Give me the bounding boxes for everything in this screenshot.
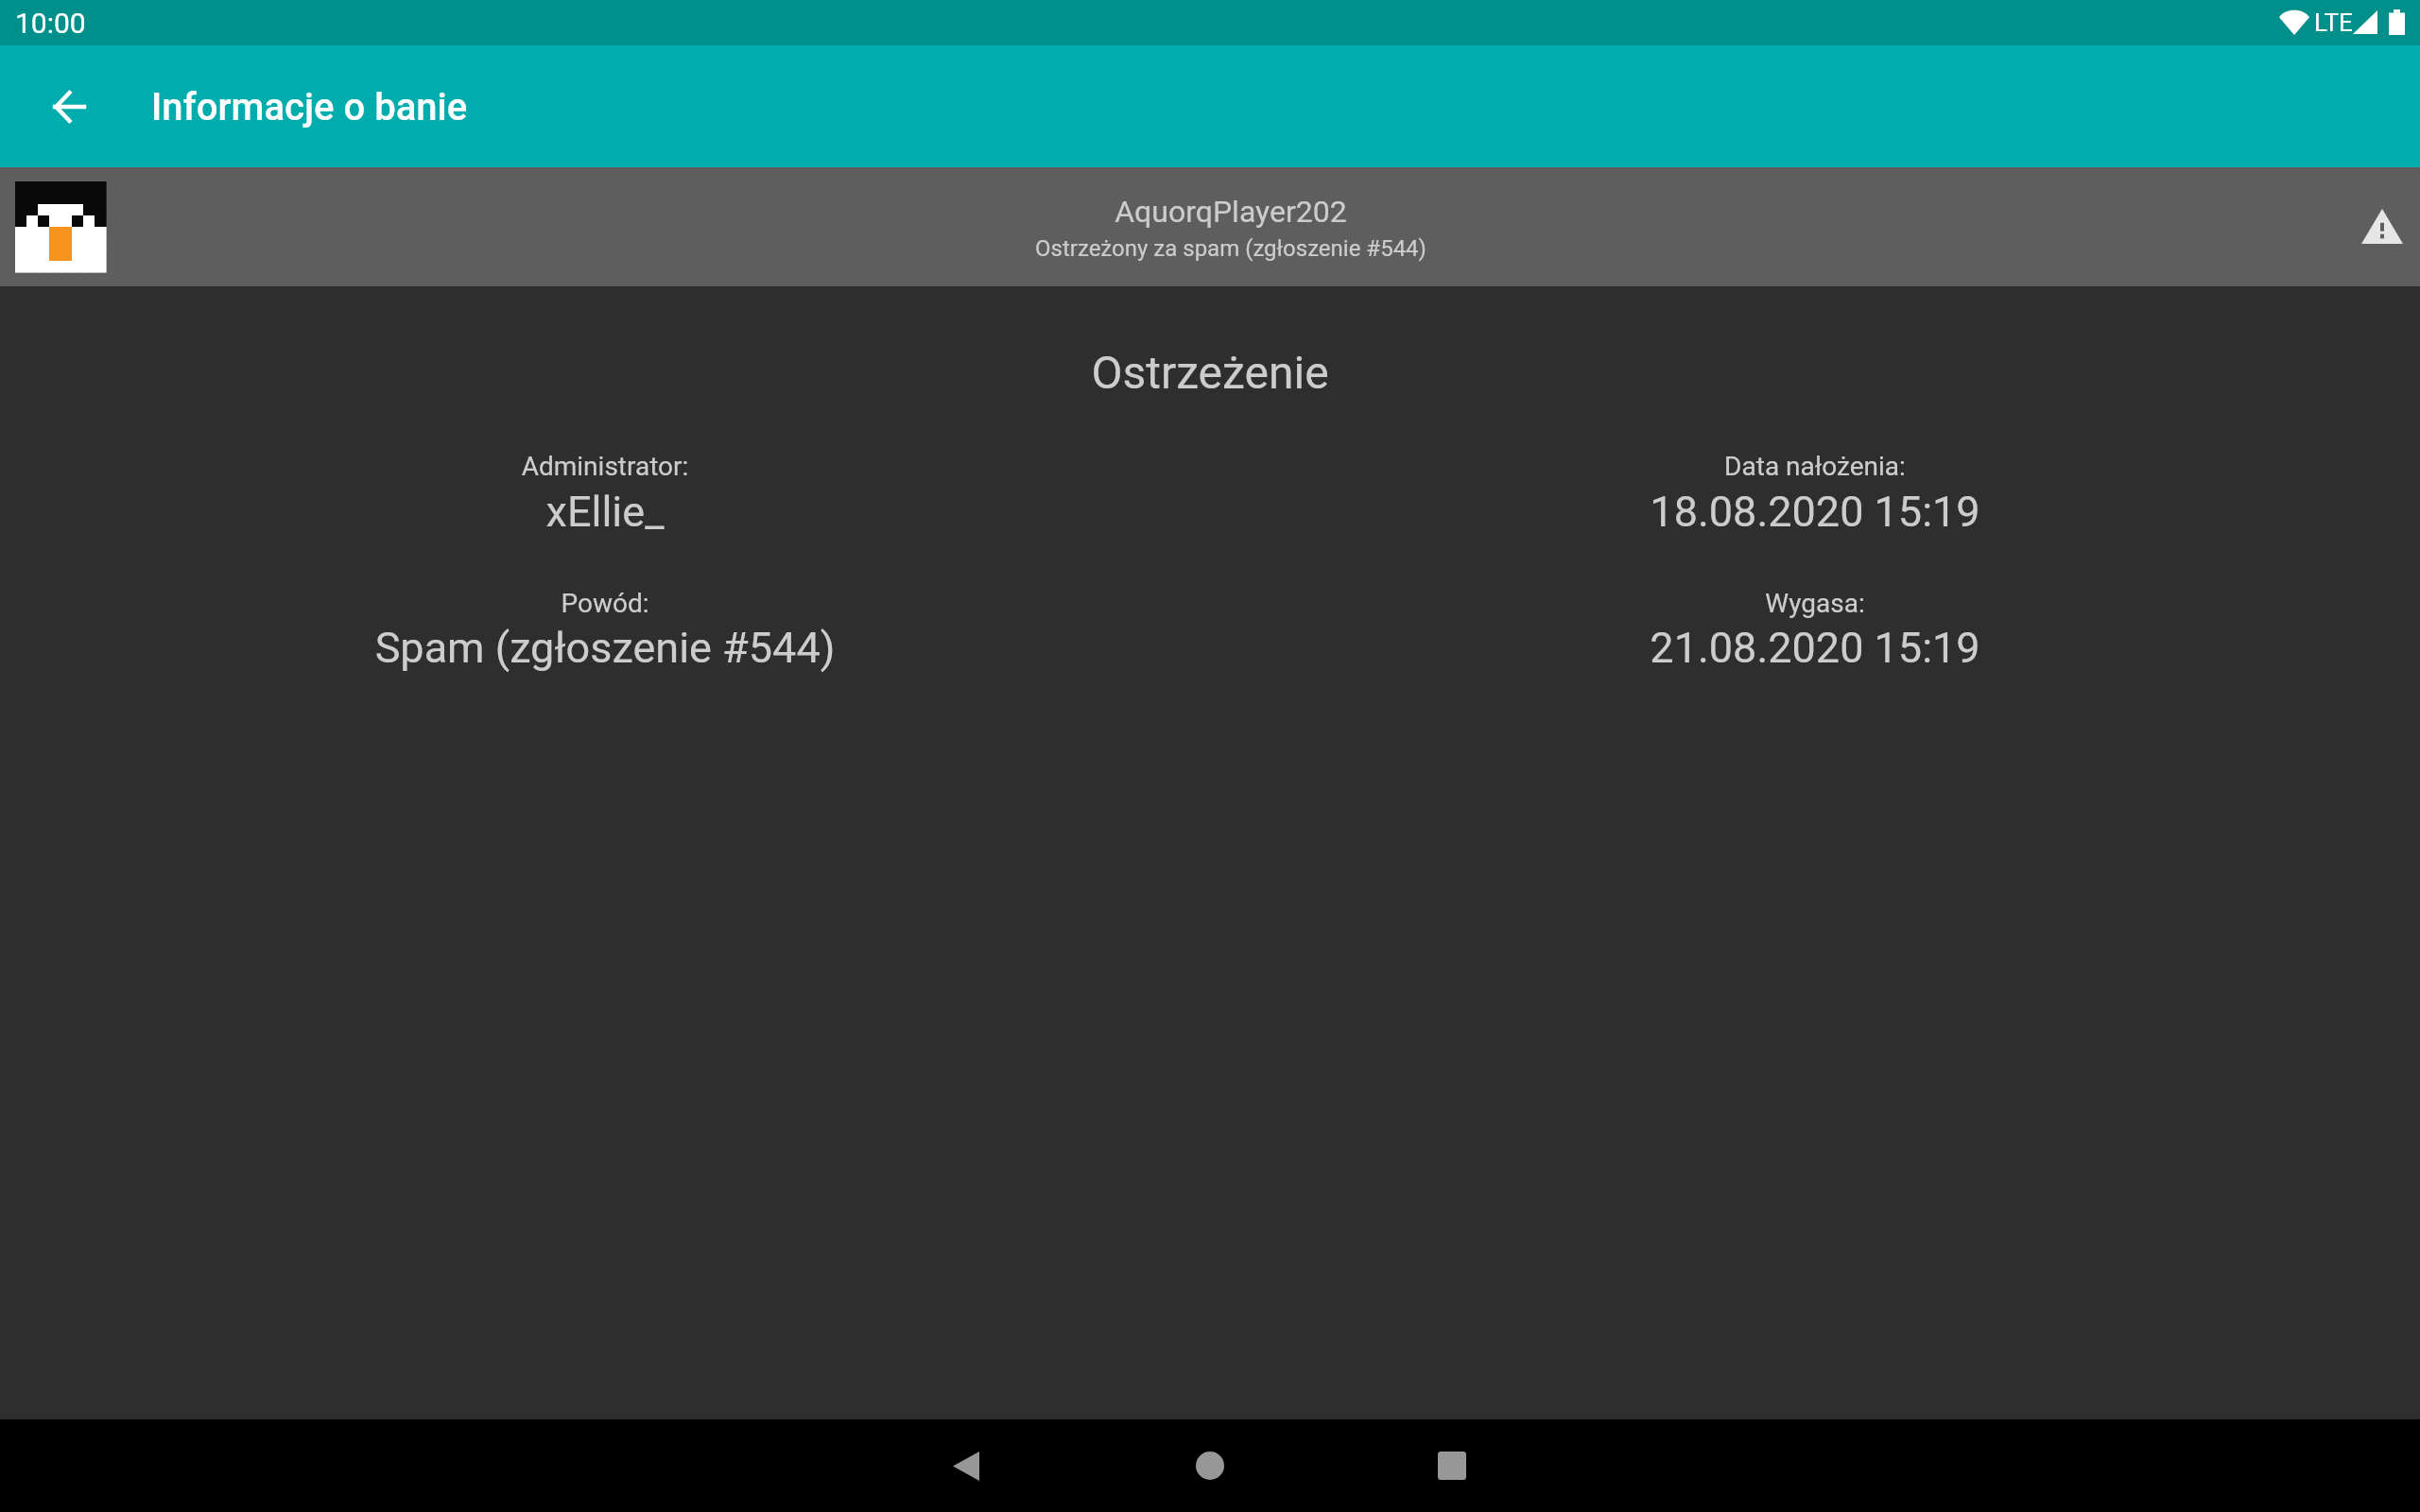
other: Mobile signal (2353, 10, 2377, 34)
staticText: Ostrzeżony za spam (zgłoszenie #544) (1035, 235, 1426, 262)
button[interactable]: Back (23, 83, 113, 129)
staticText: Powód: (0, 588, 1210, 619)
staticText: Wygasa: (1210, 588, 2420, 619)
other: Warning (2356, 194, 2409, 260)
staticText: 21.08.2020 15:19 (1210, 623, 2420, 673)
staticText: Administrator: (0, 451, 1210, 482)
staticText: Spam (zgłoszenie #544) (0, 623, 1210, 673)
button[interactable]: Recent apps (1376, 1419, 1528, 1512)
button[interactable]: AquorqPlayer202 (0, 167, 2420, 286)
staticText: 10:00 (15, 7, 86, 40)
other: Battery (2389, 9, 2405, 35)
staticText: Ostrzeżenie (0, 346, 2420, 399)
other: Wi-Fi (2279, 9, 2309, 35)
button[interactable]: Home (1134, 1419, 1286, 1512)
staticText: AquorqPlayer202 (1115, 194, 1347, 230)
button[interactable]: Back (890, 1419, 1042, 1512)
staticText: xEllie_ (0, 487, 1210, 537)
staticText: LTE (2314, 9, 2353, 37)
staticText: 18.08.2020 15:19 (1210, 487, 2420, 537)
staticText: Informacje o banie (151, 85, 468, 129)
staticText: Data nałożenia: (1210, 451, 2420, 482)
